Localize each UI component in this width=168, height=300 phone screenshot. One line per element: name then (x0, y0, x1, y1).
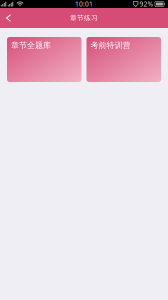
button[interactable]: Back (0, 8, 17, 28)
staticText: 92% (139, 0, 153, 8)
button[interactable]: 章节全题库 (7, 37, 81, 82)
button[interactable]: 考前特训营 (86, 37, 161, 82)
staticText: 章节练习 (70, 14, 98, 22)
staticText: 章节全题库 (11, 40, 51, 50)
staticText: 10:01 (75, 0, 93, 8)
staticText: 考前特训营 (90, 40, 130, 50)
